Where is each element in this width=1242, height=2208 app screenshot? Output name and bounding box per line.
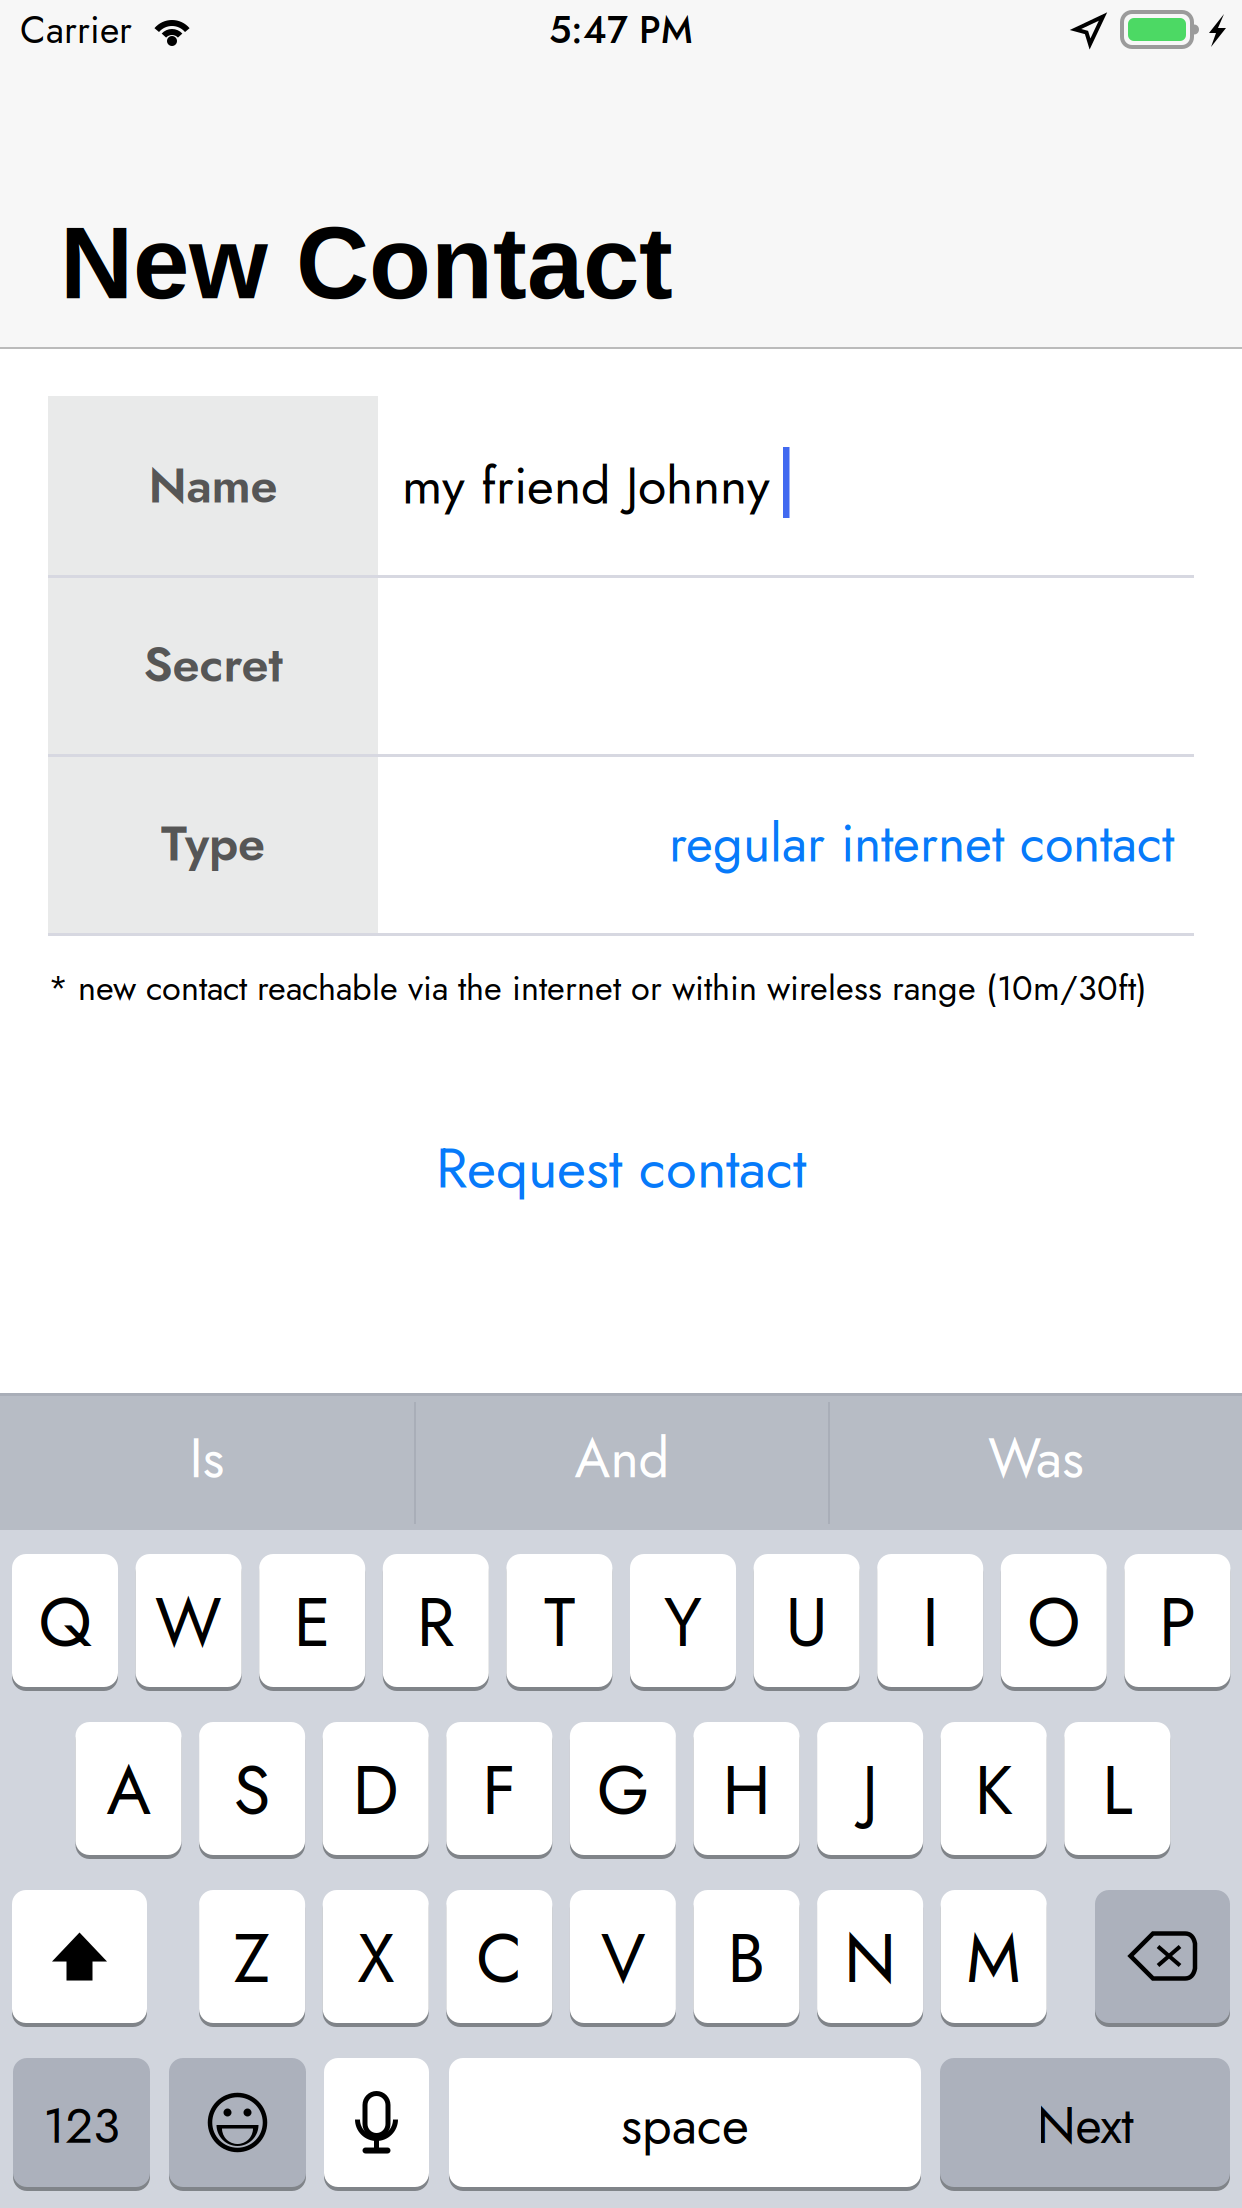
button[interactable]: Delete — [1095, 1890, 1230, 2027]
button[interactable]: B — [693, 1890, 799, 2027]
staticText: Next — [1036, 2089, 1133, 2162]
button[interactable]: Is — [0, 1391, 414, 1526]
button[interactable]: Request contact — [0, 1126, 1242, 1210]
staticText: H — [722, 1742, 770, 1839]
button[interactable]: space — [449, 2058, 921, 2191]
button[interactable]: Emoji — [169, 2058, 306, 2191]
button[interactable]: A — [75, 1722, 181, 1859]
button[interactable]: T — [506, 1554, 612, 1691]
staticText: my friend Johnny — [402, 448, 770, 523]
staticText: And — [574, 1419, 669, 1497]
button[interactable]: G — [570, 1722, 676, 1859]
staticText: E — [294, 1574, 331, 1671]
button[interactable]: F — [446, 1722, 552, 1859]
staticText: M — [966, 1910, 1021, 2007]
staticText: 123 — [43, 2090, 120, 2161]
staticText: N — [844, 1910, 896, 2007]
staticText: G — [597, 1742, 649, 1839]
staticText: regular internet contact — [669, 806, 1174, 881]
staticText: X — [357, 1910, 394, 2007]
button[interactable]: And — [416, 1391, 828, 1526]
staticText: space — [621, 2088, 749, 2163]
button[interactable]: Z — [199, 1890, 305, 2027]
staticText: Was — [988, 1419, 1084, 1497]
staticText: T — [544, 1574, 575, 1671]
staticText: P — [1159, 1574, 1196, 1671]
button[interactable]: Numbers — [13, 2058, 150, 2191]
button[interactable]: X — [323, 1890, 429, 2027]
button[interactable]: N — [817, 1890, 923, 2027]
staticText: Request contact — [436, 1127, 806, 1208]
button[interactable]: I — [877, 1554, 983, 1691]
staticText: Name — [148, 450, 277, 521]
staticText: C — [476, 1910, 522, 2007]
staticText: V — [601, 1910, 645, 2007]
staticText: Q — [38, 1574, 91, 1671]
staticText: Is — [189, 1419, 224, 1497]
button[interactable]: W — [136, 1554, 242, 1691]
button[interactable]: Dictation — [324, 2058, 429, 2191]
button[interactable]: V — [570, 1890, 676, 2027]
button[interactable]: P — [1124, 1554, 1230, 1691]
staticText: L — [1102, 1742, 1132, 1839]
button[interactable]: S — [199, 1722, 305, 1859]
button[interactable]: Shift — [12, 1890, 147, 2027]
button[interactable]: D — [323, 1722, 429, 1859]
staticText: * new contact reachable via the internet… — [48, 963, 1147, 1013]
staticText: 5:47 PM — [549, 3, 693, 57]
button[interactable]: O — [1001, 1554, 1107, 1691]
staticText: Type — [161, 808, 265, 879]
button[interactable]: L — [1064, 1722, 1170, 1859]
staticText: K — [975, 1742, 1013, 1839]
staticText: S — [234, 1742, 271, 1839]
button[interactable]: Q — [12, 1554, 118, 1691]
button[interactable]: H — [693, 1722, 799, 1859]
staticText: Y — [664, 1574, 702, 1671]
button[interactable]: E — [259, 1554, 365, 1691]
staticText: Secret — [143, 629, 282, 700]
button[interactable]: J — [817, 1722, 923, 1859]
button[interactable]: U — [754, 1554, 860, 1691]
button[interactable]: K — [941, 1722, 1047, 1859]
button[interactable]: M — [941, 1890, 1047, 2027]
staticText: A — [106, 1742, 150, 1839]
button[interactable]: regular internet contact — [378, 754, 1174, 933]
staticText: I — [922, 1574, 938, 1671]
staticText: Carrier — [20, 3, 132, 57]
button[interactable]: Y — [630, 1554, 736, 1691]
staticText: R — [417, 1574, 455, 1671]
staticText: F — [482, 1742, 516, 1839]
staticText: O — [1027, 1574, 1080, 1671]
staticText: Z — [234, 1910, 271, 2007]
staticText: W — [155, 1574, 222, 1671]
staticText: J — [862, 1742, 878, 1839]
button[interactable]: C — [446, 1890, 552, 2027]
staticText: New Contact — [60, 206, 673, 320]
button[interactable]: Was — [830, 1391, 1242, 1526]
staticText: D — [353, 1742, 399, 1839]
button[interactable]: R — [383, 1554, 489, 1691]
staticText: U — [786, 1574, 828, 1671]
button[interactable]: Next — [940, 2058, 1230, 2191]
staticText: B — [727, 1910, 765, 2007]
